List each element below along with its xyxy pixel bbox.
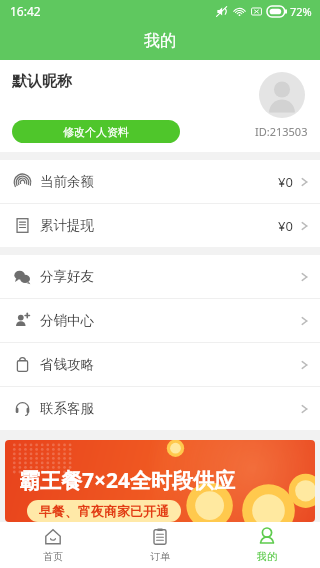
button[interactable]: 首页 — [0, 522, 106, 568]
staticText: 早餐、宵夜商家已开通 — [39, 503, 169, 519]
staticText: 72% — [290, 4, 312, 19]
staticText: ¥0 — [278, 173, 293, 191]
staticText: 我的 — [257, 550, 277, 563]
button[interactable]: 我的 — [213, 522, 320, 568]
staticText: 默认昵称 — [12, 72, 72, 91]
button[interactable]: 累计提现 — [0, 204, 320, 247]
button[interactable]: 修改个人资料 — [12, 120, 180, 143]
staticText: 订单 — [150, 550, 170, 563]
button[interactable]: 订单 — [106, 522, 213, 568]
staticText: 首页 — [43, 550, 63, 563]
staticText: 分享好友 — [40, 268, 94, 285]
staticText: 分销中心 — [40, 312, 94, 329]
button[interactable]: 霸王餐7×24全时段供应 — [5, 440, 315, 522]
button[interactable]: 分销中心 — [0, 299, 320, 342]
staticText: 当前余额 — [40, 173, 94, 190]
staticText: 累计提现 — [40, 217, 94, 234]
staticText: 修改个人资料 — [63, 125, 129, 139]
button[interactable]: 联系客服 — [0, 387, 320, 430]
button[interactable]: 当前余额 — [0, 160, 320, 203]
staticText: 霸王餐7×24全时段供应 — [19, 466, 236, 495]
staticText: 16:42 — [10, 3, 41, 19]
staticText: ¥0 — [278, 217, 293, 235]
button[interactable]: 省钱攻略 — [0, 343, 320, 386]
staticText: 省钱攻略 — [40, 356, 94, 373]
button[interactable]: Avatar — [259, 72, 305, 118]
staticText: ID:213503 — [255, 124, 308, 139]
button[interactable]: 分享好友 — [0, 255, 320, 298]
staticText: 我的 — [144, 31, 176, 51]
staticText: 联系客服 — [40, 400, 94, 417]
